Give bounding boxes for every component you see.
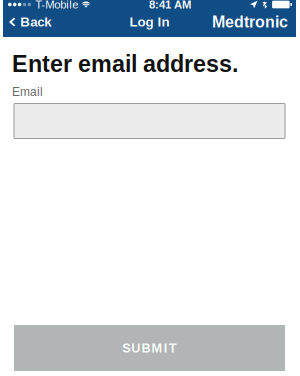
button[interactable]: Log In — [121, 12, 177, 32]
staticText: 8:41 AM — [149, 0, 191, 11]
staticText: Medtronic — [212, 13, 288, 31]
staticText: SUBMIT — [122, 341, 177, 355]
staticText: T-Mobile — [35, 0, 78, 11]
staticText: Email — [12, 85, 43, 98]
button[interactable]: SUBMIT — [14, 325, 285, 371]
button[interactable]: Back — [3, 12, 59, 32]
staticText: Back — [20, 15, 51, 29]
staticText: Enter email address. — [12, 51, 238, 77]
staticText: Log In — [129, 15, 169, 29]
